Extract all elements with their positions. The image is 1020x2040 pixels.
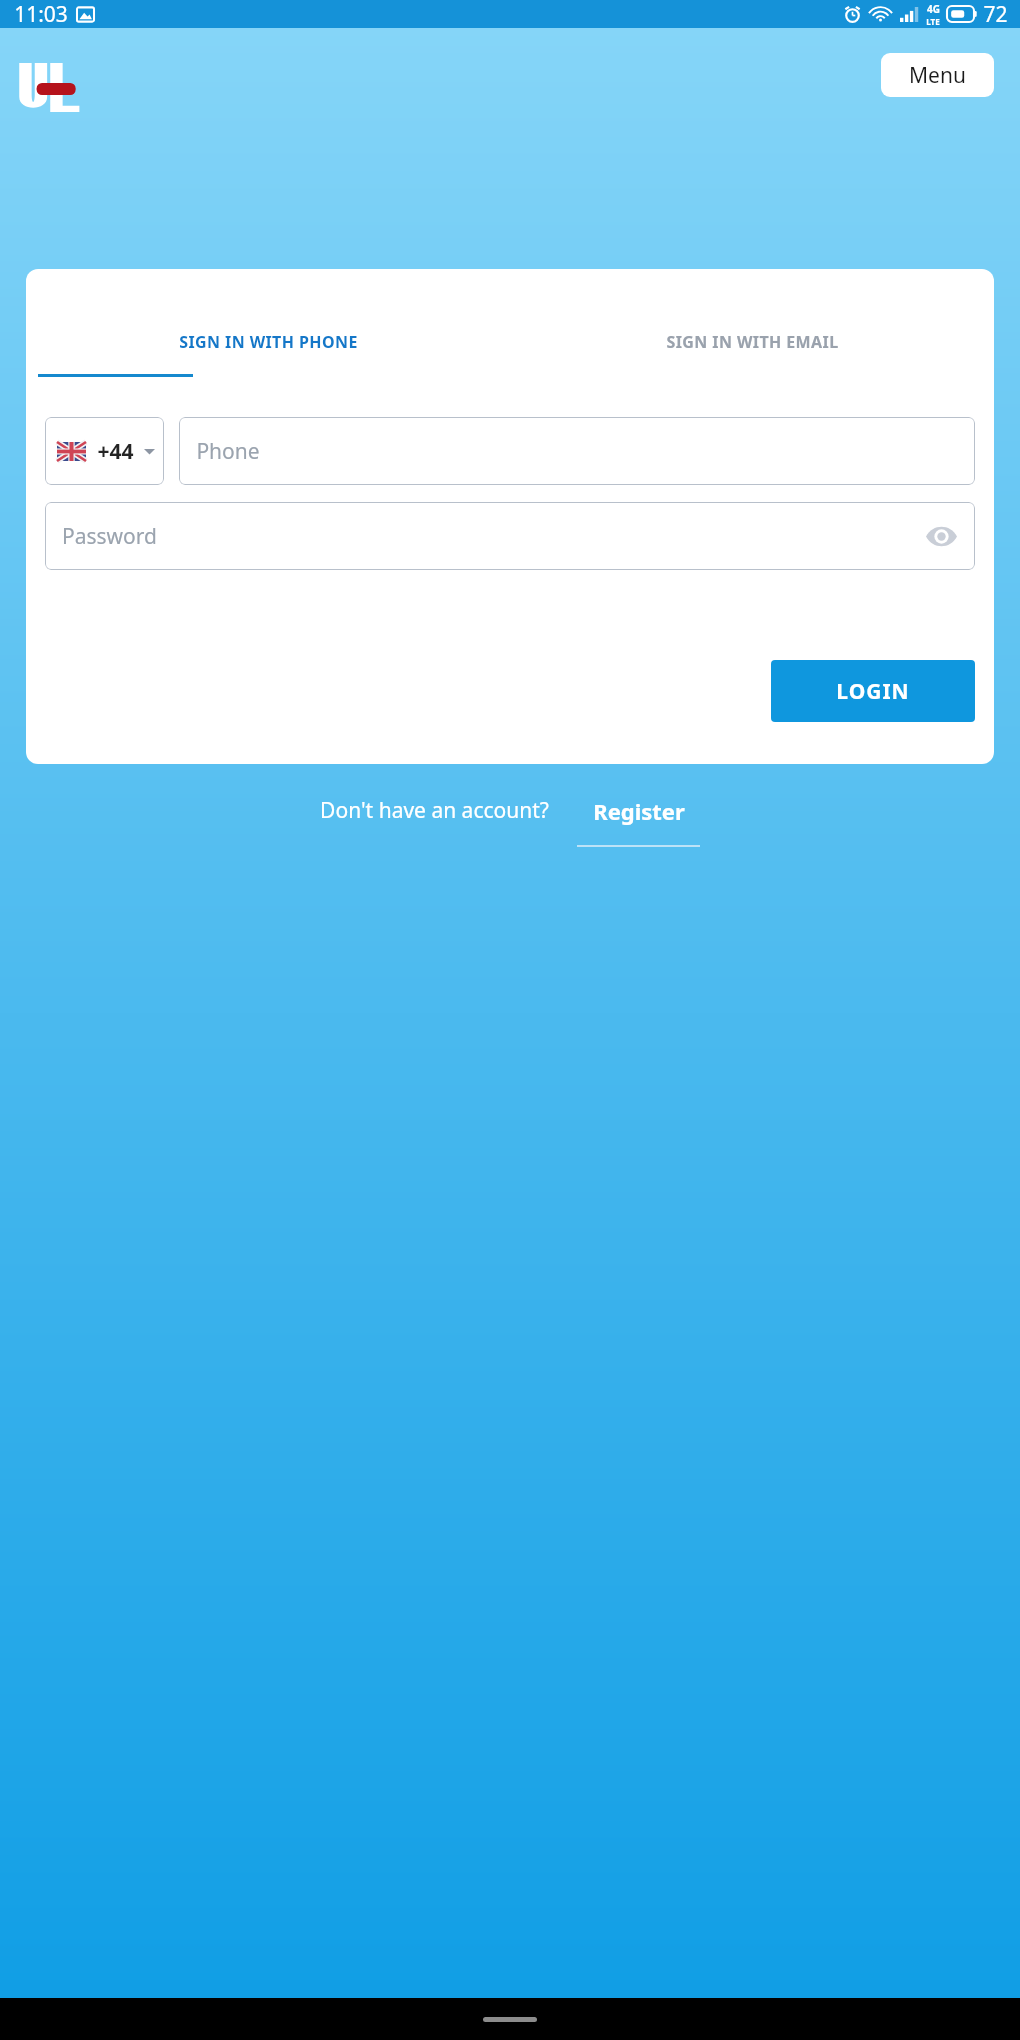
staticText: +44 [97,437,134,466]
staticText: Register [593,796,685,826]
button[interactable]: Menu [881,53,994,97]
button[interactable]: Show password [919,514,963,558]
button[interactable]: LOGIN [771,660,975,722]
button[interactable]: Register [593,796,685,826]
button[interactable]: Phone [179,417,975,485]
staticText: SIGN IN WITH EMAIL [666,331,839,353]
staticText: Password [62,522,157,551]
staticText: Menu [909,61,966,90]
button[interactable]: Logo [18,57,80,107]
staticText: 72 [983,0,1008,28]
staticText: LOGIN [836,677,910,706]
button[interactable]: SIGN IN WITH PHONE [26,317,510,367]
staticText: 4G [927,2,940,16]
button[interactable]: +44 [45,417,164,485]
staticText: LTE [926,16,940,27]
staticText: Don't have an account? [320,796,549,825]
button[interactable]: SIGN IN WITH EMAIL [510,317,994,367]
staticText: 11:03 [14,0,68,28]
button[interactable]: Password [45,502,975,570]
staticText: SIGN IN WITH PHONE [179,331,358,353]
staticText: Phone [196,437,260,466]
